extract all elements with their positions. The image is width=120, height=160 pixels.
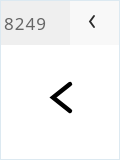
button[interactable]: Back <box>70 1 119 45</box>
button[interactable]: Back <box>51 82 72 113</box>
button[interactable]: 8249 <box>1 1 70 45</box>
staticText: 8249 <box>4 12 47 35</box>
